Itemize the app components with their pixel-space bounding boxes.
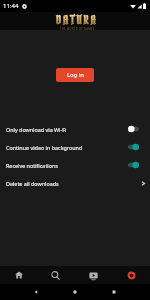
button[interactable]: Log in <box>56 68 94 82</box>
staticText: Log in <box>67 71 84 79</box>
staticText: 11:44 <box>3 2 19 10</box>
staticText: DATURA <box>56 12 98 27</box>
button[interactable]: Home <box>0 266 37 284</box>
button[interactable]: Only download via Wi-Fi <box>0 120 150 138</box>
button[interactable]: Videos <box>74 266 112 284</box>
button[interactable]: Receive notifications <box>0 156 150 174</box>
staticText: THE WORLD OF GAMES <box>60 27 95 30</box>
button[interactable]: Search <box>37 266 74 284</box>
staticText: Continue video in background <box>6 144 127 151</box>
staticText: Only download via Wi-Fi <box>6 126 127 133</box>
button[interactable]: Profile <box>112 266 150 284</box>
button[interactable]: Delete all downloads <box>0 174 150 192</box>
button[interactable]: Continue video in background <box>0 138 150 156</box>
staticText: Receive notifications <box>6 162 127 169</box>
staticText: Delete all downloads <box>6 180 139 187</box>
